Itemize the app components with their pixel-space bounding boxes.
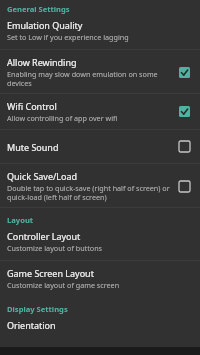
staticText: Mute Sound — [7, 141, 59, 153]
staticText: Set to Low if you experience lagging — [7, 32, 129, 42]
button[interactable]: Emulation Quality — [0, 17, 200, 49]
button[interactable]: Controller Layout — [0, 228, 200, 260]
other: Wifi Control — [177, 104, 192, 119]
staticText: Allow Rewinding — [7, 56, 77, 68]
button[interactable]: Quick Save/Load — [0, 164, 200, 207]
button[interactable]: Game Screen Layout — [0, 261, 200, 297]
button[interactable]: Allow Rewinding — [0, 50, 200, 93]
button[interactable]: Mute Sound — [0, 130, 200, 163]
staticText: Layout — [7, 215, 193, 225]
other: Allow Rewinding — [177, 65, 192, 80]
staticText: Enabling may slow down emulation on some… — [7, 69, 172, 88]
staticText: Customize layout of game screen — [7, 280, 120, 290]
other: Mute Sound — [177, 139, 192, 154]
staticText: Emulation Quality — [7, 19, 83, 31]
staticText: Orientation — [7, 319, 56, 331]
staticText: Allow controlling of app over wifi — [7, 113, 118, 123]
staticText: Quick Save/Load — [7, 170, 78, 182]
staticText: Wifi Control — [7, 100, 57, 112]
staticText: General Settings — [7, 4, 193, 14]
button[interactable]: Wifi Control — [0, 94, 200, 129]
staticText: Game Screen Layout — [7, 267, 94, 279]
button[interactable]: Orientation — [0, 317, 200, 337]
staticText: Double tap to quick-save (right half of … — [7, 183, 172, 202]
other: Quick Save/Load — [177, 179, 192, 194]
staticText: Controller Layout — [7, 230, 81, 242]
staticText: Display Settings — [7, 304, 193, 314]
staticText: Customize layout of buttons — [7, 243, 103, 253]
